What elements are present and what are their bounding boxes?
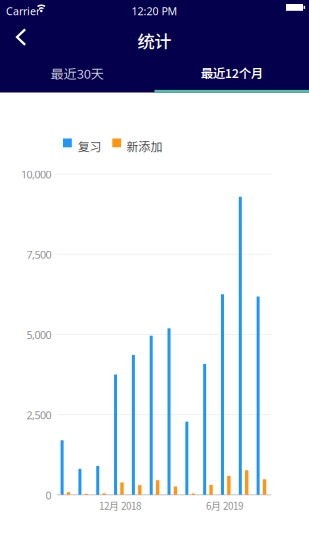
- button[interactable]: 最近12个月: [154, 55, 309, 91]
- button[interactable]: Back: [0, 19, 44, 55]
- staticText: 统计: [137, 28, 171, 53]
- staticText: 新添加: [126, 137, 162, 155]
- staticText: 5,000: [26, 328, 51, 342]
- staticText: 12:20 PM: [131, 4, 177, 18]
- staticText: 7,500: [26, 248, 51, 262]
- staticText: 0: [45, 488, 51, 502]
- staticText: 10,000: [21, 167, 51, 182]
- staticText: 最近30天: [51, 63, 104, 82]
- staticText: Carrier: [6, 4, 40, 18]
- staticText: 6月 2019: [206, 498, 243, 513]
- staticText: 2,500: [26, 408, 51, 422]
- staticText: 复习: [77, 137, 101, 155]
- staticText: 最近12个月: [201, 63, 263, 81]
- staticText: 12月 2018: [99, 498, 141, 513]
- button[interactable]: 最近30天: [0, 55, 154, 91]
